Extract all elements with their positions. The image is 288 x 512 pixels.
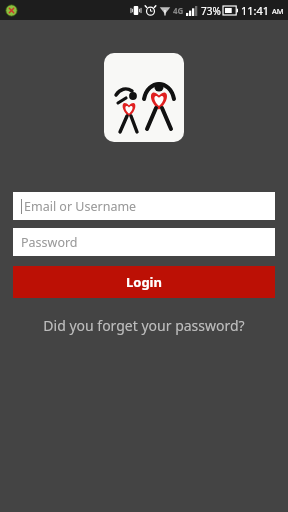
button[interactable]: Login	[13, 266, 275, 298]
button[interactable]: Email or Username	[13, 192, 275, 220]
staticText: 11:41	[241, 3, 270, 18]
button[interactable]: Password	[13, 228, 275, 256]
staticText: AM	[272, 6, 284, 16]
staticText: Password	[21, 234, 78, 251]
staticText: 73%	[201, 4, 221, 18]
button[interactable]: Did you forget your password?	[13, 316, 275, 335]
staticText: Did you forget your password?	[43, 316, 245, 335]
staticText: Email or Username	[24, 198, 137, 215]
staticText: Login	[126, 273, 162, 291]
staticText: 4G	[173, 5, 184, 16]
